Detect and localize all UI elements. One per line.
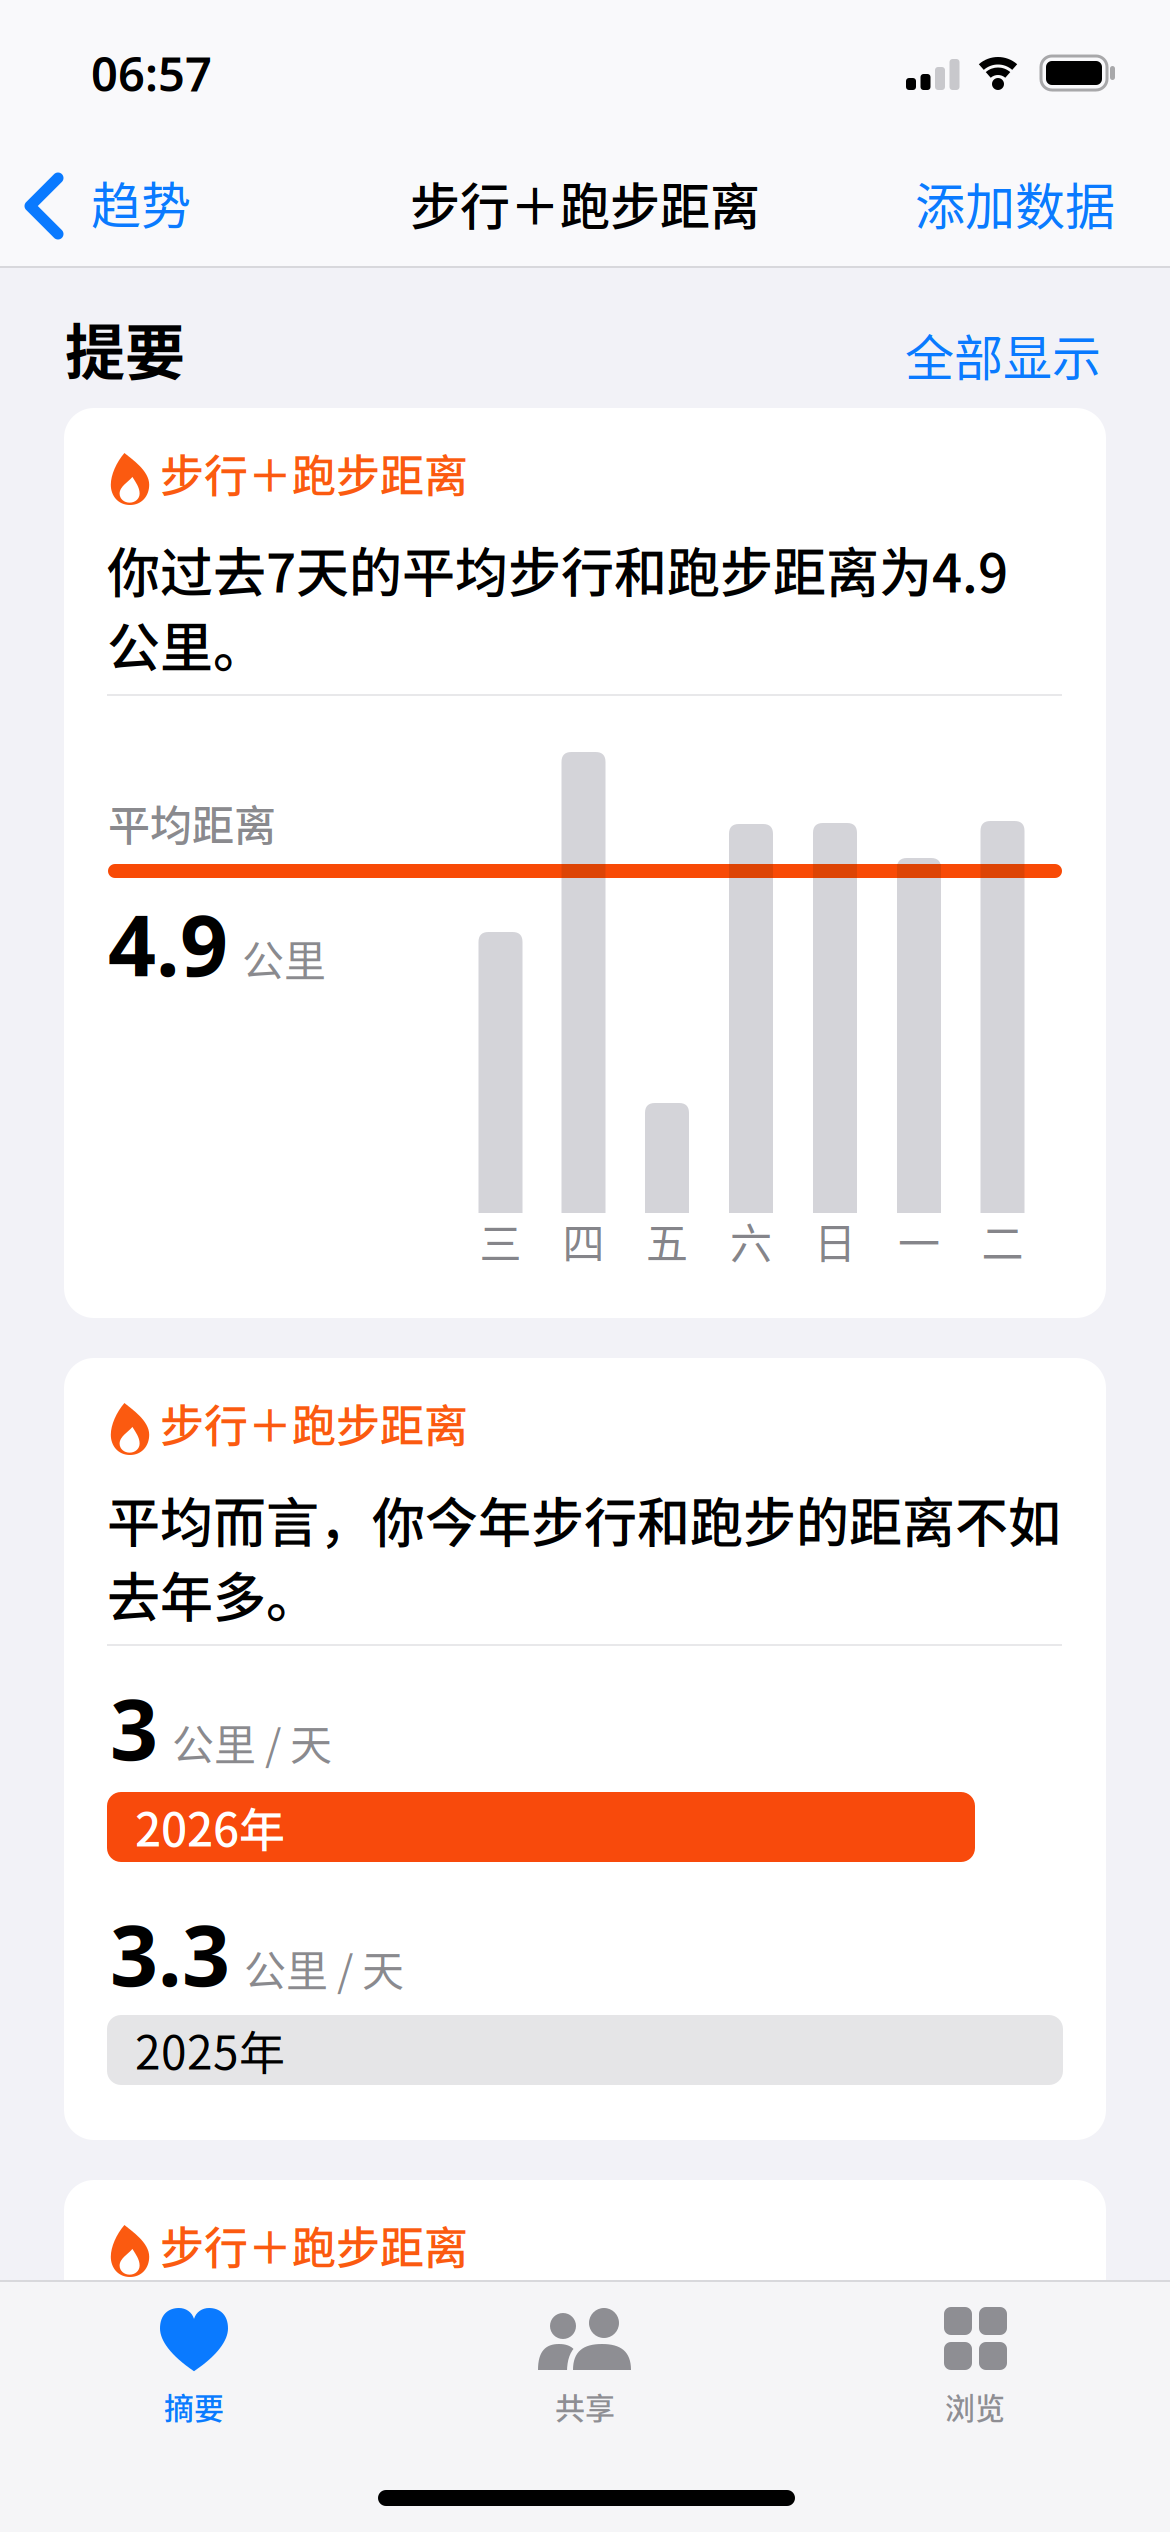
staticText: 共享 (555, 2385, 615, 2427)
staticText: 3 (110, 1672, 158, 1783)
staticText: 06:57 (91, 42, 212, 104)
button[interactable]: 步行＋跑步距离 (64, 408, 1106, 1318)
button[interactable]: 趋势 (28, 170, 268, 250)
button[interactable]: 浏览 (825, 2280, 1125, 2450)
staticText: 公里 / 天 (172, 1712, 332, 1772)
staticText: 平均距离 (108, 793, 276, 852)
staticText: 步行＋跑步距离 (160, 2214, 468, 2276)
staticText: 提要 (65, 306, 185, 391)
staticText: 2025年 (135, 2017, 285, 2082)
staticText: 公里 / 天 (244, 1938, 404, 1998)
button[interactable]: 共享 (435, 2280, 735, 2450)
staticText: 添加数据 (915, 168, 1115, 239)
button[interactable]: 全部显示 (905, 320, 1101, 389)
staticText: 一 (898, 1211, 940, 1270)
staticText: 趋势 (91, 167, 191, 238)
staticText: 五 (646, 1211, 688, 1270)
staticText: 二 (981, 1211, 1023, 1270)
staticText: 步行＋跑步距离 (160, 1392, 468, 1454)
staticText: 平均而言，你今年步行和跑步的距离不如 去年多。 (107, 1482, 1061, 1632)
staticText: 步行＋跑步距离 (160, 442, 468, 504)
staticText: 全部显示 (905, 320, 1101, 389)
staticText: 你过去7天的平均步行和跑步距离为4.9 公里。 (107, 532, 1008, 682)
button[interactable]: 摘要 (44, 2280, 344, 2450)
staticText: 浏览 (945, 2385, 1005, 2427)
staticText: 3.3 (110, 1898, 230, 2009)
staticText: 4.9 (108, 888, 228, 999)
staticText: 公里 (242, 928, 326, 988)
button[interactable]: 步行＋跑步距离 (64, 1358, 1106, 2140)
button[interactable]: 步行＋跑步距离 (64, 2180, 1106, 2340)
staticText: 四 (562, 1211, 604, 1270)
staticText: 2026年 (135, 1794, 285, 1859)
button[interactable]: 添加数据 (915, 168, 1115, 239)
staticText: 步行＋跑步距离 (410, 168, 760, 239)
staticText: 三 (479, 1211, 521, 1270)
staticText: 日 (814, 1211, 856, 1270)
staticText: 摘要 (164, 2385, 224, 2427)
staticText: 六 (730, 1211, 772, 1270)
